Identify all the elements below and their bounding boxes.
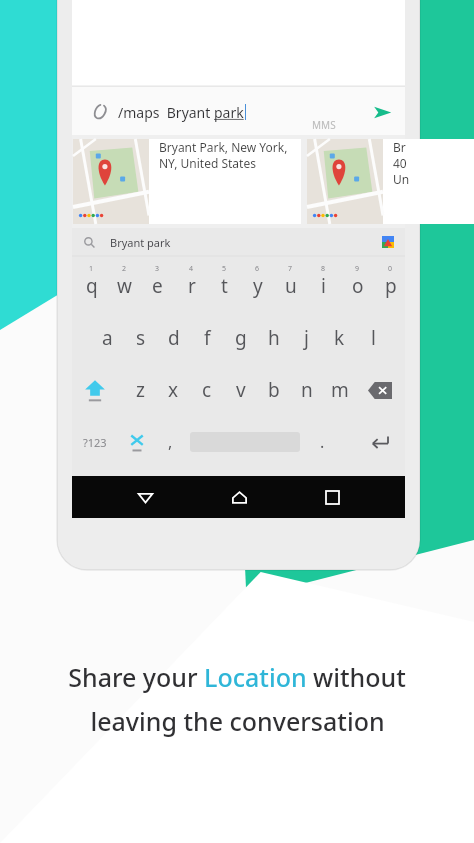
- staticText: 40: [393, 155, 407, 171]
- staticText: Un: [393, 171, 410, 187]
- button[interactable]: Shift: [76, 368, 114, 412]
- staticText: 6: [255, 264, 260, 274]
- button[interactable]: 5: [208, 262, 241, 312]
- staticText: i: [321, 273, 326, 299]
- staticText: u: [285, 273, 297, 299]
- staticText: a: [102, 325, 113, 351]
- staticText: q: [86, 273, 98, 299]
- button[interactable]: l: [357, 316, 390, 360]
- button[interactable]: Home: [218, 476, 260, 518]
- button[interactable]: c: [190, 368, 223, 412]
- button[interactable]: z: [124, 368, 157, 412]
- button[interactable]: Back: [124, 476, 166, 518]
- button[interactable]: 4: [175, 262, 208, 312]
- staticText: c: [202, 377, 212, 403]
- staticText: b: [268, 377, 280, 403]
- staticText: o: [352, 273, 364, 299]
- staticText: ?123: [83, 435, 107, 450]
- button[interactable]: Enter: [360, 420, 400, 464]
- staticText: 5: [222, 264, 227, 274]
- staticText: v: [236, 377, 246, 403]
- button[interactable]: a: [91, 316, 124, 360]
- staticText: m: [331, 377, 349, 403]
- staticText: Bryant park: [110, 235, 171, 250]
- staticText: k: [334, 325, 345, 351]
- staticText: 9: [355, 264, 360, 274]
- button[interactable]: 2: [108, 262, 141, 312]
- button[interactable]: Backspace: [360, 368, 400, 412]
- staticText: 1: [89, 264, 94, 274]
- button[interactable]: g: [224, 316, 257, 360]
- staticText: Br: [393, 139, 406, 155]
- staticText: 0: [388, 264, 393, 274]
- staticText: f: [204, 325, 211, 351]
- button[interactable]: n: [290, 368, 323, 412]
- button[interactable]: Br: [307, 139, 474, 224]
- button[interactable]: ,: [156, 420, 184, 464]
- button[interactable]: Close: [120, 420, 154, 464]
- staticText: g: [235, 325, 247, 351]
- button[interactable]: 0: [374, 262, 407, 312]
- staticText: l: [371, 325, 376, 351]
- staticText: /maps Bryant: [118, 103, 214, 122]
- staticText: s: [136, 325, 146, 351]
- button[interactable]: x: [157, 368, 190, 412]
- staticText: park: [214, 103, 244, 122]
- other: Search: [84, 237, 95, 248]
- staticText: p: [385, 273, 397, 299]
- staticText: e: [152, 273, 163, 299]
- staticText: NY, United States: [159, 155, 256, 171]
- staticText: z: [136, 377, 145, 403]
- staticText: .: [320, 431, 325, 453]
- button[interactable]: f: [191, 316, 224, 360]
- button[interactable]: d: [157, 316, 190, 360]
- staticText: 8: [321, 264, 326, 274]
- button[interactable]: ?123: [74, 420, 116, 464]
- staticText: MMS: [312, 118, 336, 132]
- staticText: w: [117, 273, 132, 299]
- staticText: 4: [189, 264, 194, 274]
- button[interactable]: 3: [141, 262, 174, 312]
- staticText: j: [304, 325, 309, 351]
- staticText: 2: [122, 264, 127, 274]
- staticText: y: [253, 273, 263, 299]
- button[interactable]: k: [323, 316, 356, 360]
- staticText: x: [168, 377, 179, 403]
- button[interactable]: h: [257, 316, 290, 360]
- staticText: leaving the conversation: [90, 704, 385, 738]
- staticText: Bryant Park, New York,: [159, 139, 288, 155]
- button[interactable]: b: [257, 368, 290, 412]
- staticText: r: [188, 273, 196, 299]
- button[interactable]: 7: [274, 262, 307, 312]
- button[interactable]: m: [323, 368, 356, 412]
- staticText: 3: [155, 264, 160, 274]
- staticText: d: [168, 325, 180, 351]
- staticText: ,: [168, 431, 173, 453]
- button[interactable]: Search: [72, 228, 405, 256]
- staticText: t: [221, 273, 228, 299]
- button[interactable]: Recents: [311, 476, 353, 518]
- button[interactable]: Send: [366, 96, 398, 128]
- button[interactable]: /maps Bryant: [118, 96, 246, 128]
- staticText: Share your Location without: [68, 660, 406, 694]
- button[interactable]: Bryant Park, New York,: [73, 139, 301, 224]
- button[interactable]: s: [124, 316, 157, 360]
- button[interactable]: .: [308, 420, 336, 464]
- button[interactable]: 1: [75, 262, 108, 312]
- button[interactable]: 6: [241, 262, 274, 312]
- staticText: n: [301, 377, 313, 403]
- button[interactable]: j: [290, 316, 323, 360]
- button[interactable]: 8: [307, 262, 340, 312]
- staticText: 7: [288, 264, 293, 274]
- button[interactable]: 9: [341, 262, 374, 312]
- staticText: h: [268, 325, 280, 351]
- button[interactable]: v: [224, 368, 257, 412]
- button[interactable]: Attach: [84, 96, 116, 128]
